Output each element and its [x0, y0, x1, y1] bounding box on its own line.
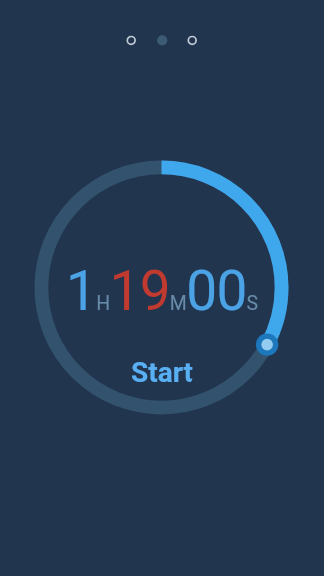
- button[interactable]: Start: [131, 356, 194, 389]
- button[interactable]: Adjust timer duration: [254, 332, 280, 358]
- button[interactable]: Timer page: [151, 29, 173, 51]
- staticText: Start: [131, 356, 194, 389]
- button[interactable]: Stopwatch page: [120, 29, 142, 51]
- button[interactable]: Alarm page: [181, 29, 203, 51]
- staticText: 1H19M00S: [66, 259, 258, 323]
